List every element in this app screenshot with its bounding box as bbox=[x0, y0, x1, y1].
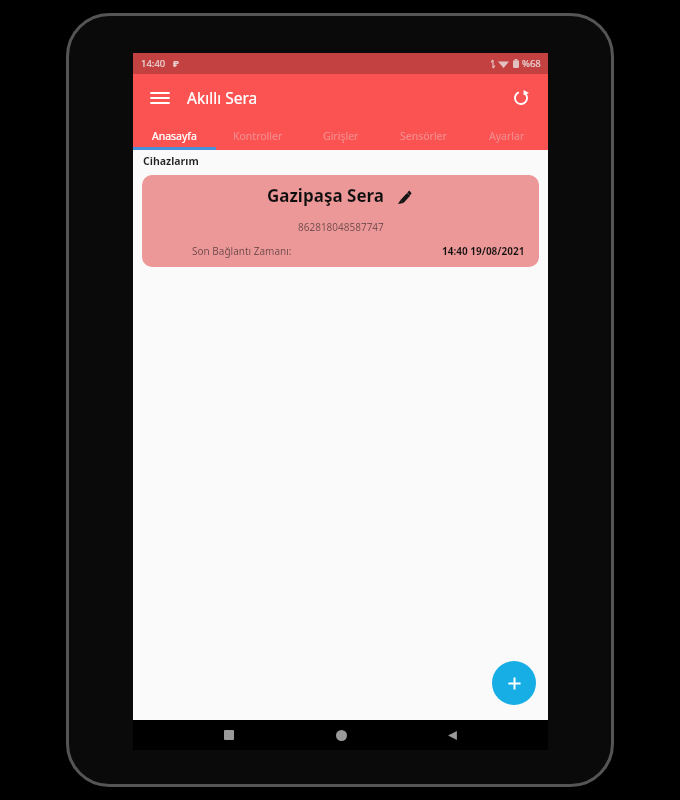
staticText: 14:40 bbox=[141, 57, 166, 70]
staticText: ₽ bbox=[173, 57, 179, 70]
staticText: Akıllı Sera bbox=[187, 87, 258, 108]
button[interactable]: Gazipaşa Sera bbox=[142, 175, 539, 267]
button[interactable]: Anasayfa bbox=[133, 121, 216, 150]
staticText: Sensörler bbox=[400, 129, 447, 143]
staticText: Cihazlarım bbox=[143, 154, 199, 168]
button[interactable]: Add new device bbox=[492, 661, 536, 705]
button[interactable]: Refresh bbox=[505, 82, 537, 114]
button[interactable]: Home bbox=[325, 720, 357, 750]
button[interactable]: Open navigation drawer bbox=[144, 82, 176, 114]
staticText: 862818048587747 bbox=[298, 220, 384, 234]
button[interactable]: Ayarlar bbox=[465, 121, 548, 150]
staticText: Son Bağlantı Zamanı: bbox=[192, 244, 292, 258]
staticText: Girişler bbox=[323, 129, 359, 143]
staticText: Anasayfa bbox=[152, 129, 197, 143]
button[interactable]: Recent apps bbox=[213, 720, 245, 750]
button[interactable]: Sensörler bbox=[382, 121, 465, 150]
staticText: Ayarlar bbox=[489, 129, 525, 143]
button[interactable]: Edit device name bbox=[392, 185, 414, 207]
button[interactable]: Kontroller bbox=[216, 121, 299, 150]
button[interactable]: Girişler bbox=[299, 121, 382, 150]
staticText: Gazipaşa Sera bbox=[267, 184, 384, 207]
button[interactable]: Back bbox=[436, 720, 468, 750]
staticText: Kontroller bbox=[233, 129, 283, 143]
staticText: %68 bbox=[522, 57, 541, 70]
staticText: 14:40 19/08/2021 bbox=[442, 244, 525, 258]
